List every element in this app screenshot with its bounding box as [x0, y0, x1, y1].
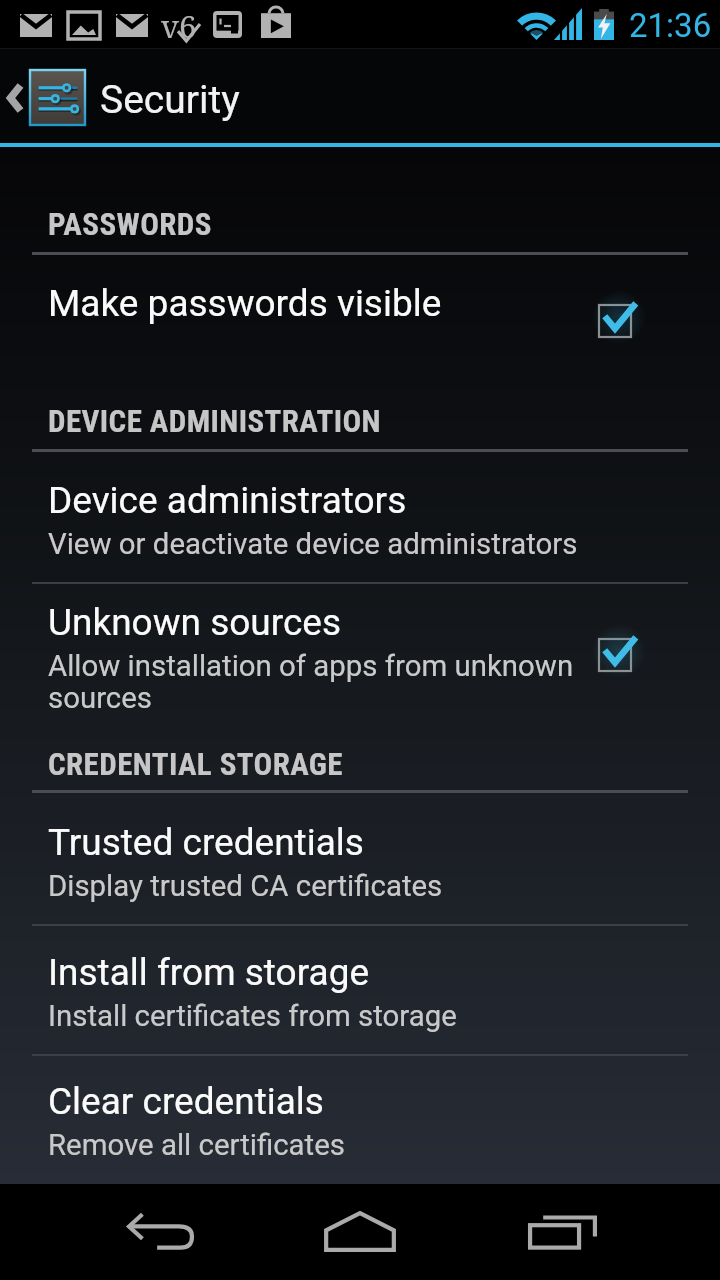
button[interactable]: Security	[0, 50, 720, 145]
staticText: Remove all certificates	[48, 1128, 345, 1162]
staticText: CREDENTIAL STORAGE	[48, 746, 343, 782]
staticText: Device administrators	[48, 479, 407, 522]
staticText: 21:36	[629, 6, 712, 45]
button[interactable]: Recent apps	[482, 1184, 642, 1280]
button[interactable]: Install from storage	[0, 924, 720, 1054]
staticText: Unknown sources	[48, 601, 342, 644]
button[interactable]: Home	[280, 1184, 440, 1280]
button[interactable]: Trusted credentials	[0, 793, 720, 924]
staticText: Allow installation of apps from unknown …	[48, 649, 574, 716]
button[interactable]: Unknown sources	[0, 582, 720, 744]
staticText: Install from storage	[48, 951, 370, 994]
button[interactable]: Back	[80, 1184, 240, 1280]
staticText: Clear credentials	[48, 1080, 324, 1123]
staticText: PASSWORDS	[48, 206, 212, 242]
button[interactable]: Toggle Make passwords visible	[585, 291, 645, 351]
staticText: DEVICE ADMINISTRATION	[48, 403, 381, 439]
staticText: Make passwords visible	[48, 282, 442, 325]
button[interactable]: Make passwords visible	[0, 255, 720, 352]
staticText: Display trusted CA certificates	[48, 869, 443, 903]
staticText: View or deactivate device administrators	[48, 527, 578, 561]
button[interactable]: Clear credentials	[0, 1054, 720, 1184]
staticText: v6	[161, 5, 197, 47]
button[interactable]: Device administrators	[0, 452, 720, 582]
staticText: Install certificates from storage	[48, 999, 457, 1033]
button[interactable]: Toggle Unknown sources	[585, 625, 645, 685]
staticText: Trusted credentials	[48, 821, 364, 864]
staticText: Security	[100, 77, 240, 123]
